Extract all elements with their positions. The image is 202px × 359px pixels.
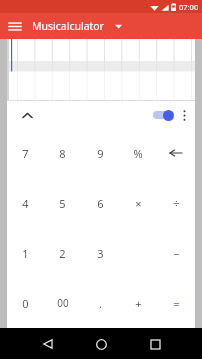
staticText: 5 — [59, 196, 66, 211]
button[interactable]: 3 — [81, 228, 119, 278]
staticText: 07:00 — [179, 2, 199, 12]
button[interactable]: . — [81, 278, 119, 328]
staticText: . — [99, 296, 102, 311]
button[interactable] — [7, 39, 195, 101]
button[interactable]: Recent apps — [141, 330, 169, 358]
button[interactable]: Musicalculator — [32, 19, 104, 33]
button[interactable]: 0 — [7, 278, 44, 328]
button[interactable]: 4 — [7, 178, 44, 228]
button[interactable]: Back — [33, 330, 61, 358]
staticText: + — [135, 296, 142, 311]
button[interactable]: − — [157, 228, 195, 278]
button[interactable]: 9 — [81, 128, 119, 178]
button[interactable]: × — [119, 178, 157, 228]
button[interactable]: More options — [176, 107, 192, 123]
staticText: 9 — [97, 146, 104, 161]
staticText: % — [133, 146, 143, 161]
staticText: 2 — [59, 246, 66, 261]
staticText: 6 — [97, 196, 104, 211]
staticText: 8 — [59, 146, 66, 161]
staticText: 3 — [97, 246, 104, 261]
button[interactable]: 5 — [44, 178, 81, 228]
button[interactable]: 00 — [44, 278, 81, 328]
button[interactable]: = — [157, 278, 195, 328]
button[interactable]: ÷ — [157, 178, 195, 228]
staticText: 7 — [22, 146, 29, 161]
button[interactable]: Toggle sound — [148, 106, 176, 124]
staticText: 0 — [22, 296, 29, 311]
button[interactable]: + — [119, 278, 157, 328]
button[interactable]: Home — [87, 330, 115, 358]
staticText: − — [173, 246, 180, 261]
button[interactable]: Open navigation drawer — [5, 16, 25, 36]
staticText: 1 — [22, 246, 29, 261]
button[interactable]: Backspace — [157, 128, 195, 178]
staticText: ÷ — [173, 196, 180, 211]
button[interactable]: 1 — [7, 228, 44, 278]
button[interactable]: 6 — [81, 178, 119, 228]
button[interactable]: 2 — [44, 228, 81, 278]
staticText: = — [173, 296, 180, 311]
button[interactable]: Collapse keypad — [17, 105, 37, 125]
button[interactable]: Select sheet — [110, 18, 126, 34]
button[interactable]: 7 — [7, 128, 44, 178]
staticText: × — [135, 196, 142, 211]
staticText: 4 — [22, 196, 29, 211]
button[interactable]: 8 — [44, 128, 81, 178]
staticText: 00 — [57, 296, 69, 310]
button[interactable]: % — [119, 128, 157, 178]
